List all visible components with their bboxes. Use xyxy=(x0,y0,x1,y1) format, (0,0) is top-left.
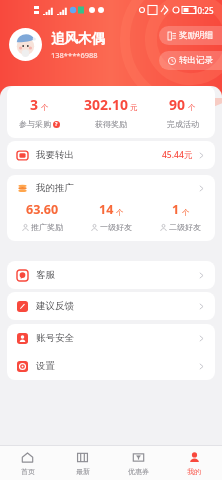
staticText: ? xyxy=(55,121,58,128)
button[interactable]: 首页 xyxy=(0,446,55,480)
staticText: 302.10 xyxy=(84,95,128,114)
staticText: 138****6988 xyxy=(51,50,98,60)
button[interactable]: 3 xyxy=(7,86,215,138)
button[interactable]: 奖励明细 xyxy=(159,26,222,45)
staticText: 账号安全 xyxy=(36,332,74,344)
staticText: 参与采购 xyxy=(19,119,51,129)
staticText: 首页 xyxy=(21,467,35,476)
staticText: 获得奖励 xyxy=(95,119,127,129)
button[interactable]: 转出记录 xyxy=(159,51,222,70)
button[interactable]: 账号安全 xyxy=(7,324,215,352)
staticText: 优惠券 xyxy=(128,467,149,476)
staticText: 我的推广 xyxy=(36,182,74,194)
staticText: 63.60 xyxy=(26,201,59,218)
button[interactable]: 我要转出 xyxy=(7,141,215,169)
staticText: 推广奖励 xyxy=(31,222,63,232)
staticText: 设置 xyxy=(36,360,55,372)
other: Avatar xyxy=(9,28,42,61)
button[interactable]: 客服 xyxy=(7,261,215,289)
staticText: 最新 xyxy=(76,467,90,476)
staticText: 个 xyxy=(41,103,49,112)
staticText: 奖励明细 xyxy=(179,30,213,41)
staticText: 二级好友 xyxy=(169,222,201,232)
staticText: 1 xyxy=(172,201,180,218)
staticText: 我要转出 xyxy=(36,149,74,161)
staticText: 客服 xyxy=(36,269,55,281)
staticText: 3 xyxy=(30,95,39,114)
button[interactable]: 建议反馈 xyxy=(7,292,215,320)
staticText: 我的 xyxy=(187,467,201,476)
button[interactable]: 设置 xyxy=(7,352,215,380)
staticText: 一级好友 xyxy=(100,222,132,232)
staticText: 个 xyxy=(182,208,190,217)
staticText: 元 xyxy=(130,103,138,112)
staticText: 个 xyxy=(116,208,124,217)
button[interactable]: 优惠券 xyxy=(110,446,166,480)
staticText: 个 xyxy=(188,103,196,112)
staticText: 建议反馈 xyxy=(36,300,74,312)
staticText: 90 xyxy=(169,95,186,114)
staticText: 14 xyxy=(99,201,114,218)
staticText: 追风木偶 xyxy=(51,30,105,47)
staticText: 45.44元 xyxy=(162,149,193,161)
button[interactable]: 我的 xyxy=(166,446,222,480)
staticText: 转出记录 xyxy=(179,55,213,66)
button[interactable]: 最新 xyxy=(55,446,110,480)
button[interactable]: 我的推广 xyxy=(7,175,215,201)
button[interactable]: Avatar xyxy=(9,28,105,61)
staticText: 完成活动 xyxy=(167,119,199,129)
staticText: 10:25 xyxy=(193,5,214,16)
